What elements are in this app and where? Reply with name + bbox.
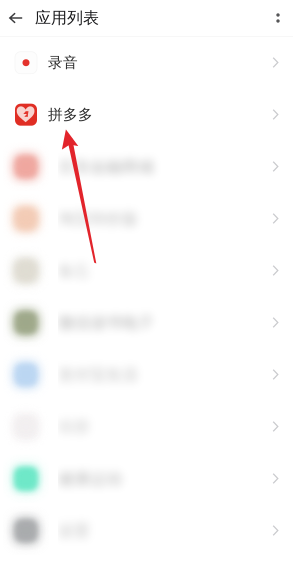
button[interactable]: 录音 [0, 37, 293, 89]
button[interactable]: More options [267, 0, 293, 36]
button[interactable]: 拼多多 [0, 89, 293, 141]
button[interactable]: Back [0, 0, 31, 36]
button[interactable]: 相册 [0, 401, 293, 453]
button[interactable]: 应用列表 [31, 0, 99, 36]
staticText: 应用列表 [35, 8, 99, 28]
button[interactable]: 健康运动 [0, 453, 293, 505]
staticText: 相册 [58, 17, 90, 37]
button[interactable]: 微信读书电子 [0, 297, 293, 349]
button[interactable]: 备忘 [0, 245, 293, 297]
staticText: 设置 [58, 121, 90, 141]
button[interactable]: 支付宝生活 [0, 349, 293, 401]
button[interactable]: 淘宝特价版 [0, 193, 293, 245]
button[interactable]: 京东金融商城 [0, 141, 293, 193]
button[interactable]: 设置 [0, 505, 293, 557]
staticText: 录音 [48, 54, 78, 72]
staticText: 拼多多 [48, 106, 93, 124]
